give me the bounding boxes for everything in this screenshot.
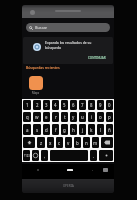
staticText: e [45, 114, 48, 120]
staticText: i [91, 114, 93, 120]
button[interactable]: CONTINUAR [85, 54, 109, 62]
staticText: u [81, 114, 84, 120]
staticText: 5 [63, 102, 66, 108]
staticText: p [108, 114, 111, 120]
button[interactable]: s [33, 124, 41, 135]
staticText: Buscar [35, 25, 48, 30]
staticText: t [64, 114, 66, 120]
staticText: , [44, 153, 46, 159]
button[interactable]: , [41, 150, 48, 161]
staticText: 7 [81, 102, 84, 108]
staticText: ñ [108, 127, 111, 133]
button[interactable]: 8 [88, 100, 95, 110]
staticText: r [55, 114, 57, 120]
staticText: a [26, 127, 29, 133]
button[interactable]: n [83, 137, 90, 148]
staticText: k [90, 127, 93, 133]
button[interactable]: Symbols [23, 150, 30, 161]
staticText: 1 [26, 102, 29, 108]
button[interactable]: f [52, 124, 59, 135]
button[interactable]: q [23, 112, 31, 122]
staticText: c [58, 140, 61, 146]
button[interactable]: k [88, 124, 95, 135]
button[interactable]: Emoji [32, 150, 39, 161]
button[interactable]: 9 [97, 100, 104, 110]
button[interactable]: Back [34, 166, 42, 174]
button[interactable]: 6 [70, 100, 77, 110]
staticText: Búsquedas recientes [26, 65, 60, 70]
staticText: x [49, 140, 52, 146]
staticText: g [63, 127, 66, 133]
button[interactable]: Recents [88, 166, 96, 174]
button[interactable]: o [97, 112, 104, 122]
button[interactable]: 4 [52, 100, 59, 110]
staticText: ?123 [24, 154, 30, 158]
button[interactable]: i [88, 112, 95, 122]
staticText: 4 [54, 102, 57, 108]
staticText: q [26, 114, 29, 120]
staticText: b [76, 140, 79, 146]
staticText: w [35, 114, 39, 120]
button[interactable]: c [56, 137, 63, 148]
button[interactable]: e [43, 112, 50, 122]
staticText: z [40, 140, 43, 146]
staticText: l [100, 127, 102, 133]
button[interactable]: 1 [23, 100, 31, 110]
button[interactable]: g [61, 124, 68, 135]
button[interactable]: 3 [43, 100, 50, 110]
button[interactable]: Backspace [101, 137, 113, 148]
staticText: 0 [108, 102, 111, 108]
button[interactable]: . [90, 150, 97, 161]
staticText: h [72, 127, 75, 133]
button[interactable]: z [37, 137, 45, 148]
staticText: 6 [72, 102, 75, 108]
staticText: 3 [45, 102, 48, 108]
button[interactable]: Hide keyboard [100, 166, 110, 174]
button[interactable]: d [43, 124, 50, 135]
staticText: n [85, 140, 88, 146]
button[interactable]: 5 [61, 100, 68, 110]
staticText: 2 [36, 102, 39, 108]
staticText: s [36, 127, 39, 133]
staticText: CONTINUAR [88, 56, 106, 60]
staticText: v [67, 140, 70, 146]
button[interactable]: t [61, 112, 68, 122]
button[interactable]: x [47, 137, 54, 148]
staticText: o [99, 114, 102, 120]
staticText: y [72, 114, 75, 120]
staticText: 8 [90, 102, 93, 108]
button[interactable]: p [106, 112, 113, 122]
button[interactable]: j [79, 124, 86, 135]
button[interactable]: r [52, 112, 59, 122]
staticText: XPERIA [63, 184, 74, 188]
button[interactable]: m [92, 137, 99, 148]
button[interactable]: Buscar [26, 23, 110, 32]
staticText: d [45, 127, 48, 133]
button[interactable]: u [79, 112, 86, 122]
staticText: f [55, 127, 57, 133]
button[interactable]: 0 [106, 100, 113, 110]
button[interactable]: Expanda los resultados de su búsqueda [23, 37, 113, 64]
button[interactable]: Shift [23, 137, 35, 148]
staticText: j [82, 127, 84, 133]
button[interactable]: h [70, 124, 77, 135]
button[interactable]: l [97, 124, 104, 135]
button[interactable]: ñ [106, 124, 113, 135]
button[interactable]: v [65, 137, 72, 148]
button[interactable]: w [33, 112, 41, 122]
button[interactable]: b [74, 137, 81, 148]
staticText: m [93, 140, 98, 146]
staticText: Maps [32, 91, 40, 95]
button[interactable]: 7 [79, 100, 86, 110]
button[interactable]: Space [50, 150, 88, 161]
button[interactable]: y [70, 112, 77, 122]
staticText: 9 [99, 102, 102, 108]
button[interactable]: 2 [33, 100, 41, 110]
button[interactable]: Maps [29, 76, 43, 95]
button[interactable]: Enter [99, 150, 113, 161]
button[interactable]: Home [63, 165, 77, 175]
staticText: . [93, 153, 95, 159]
button[interactable]: a [23, 124, 31, 135]
staticText: Expanda los resultados de su búsqueda [45, 40, 94, 50]
